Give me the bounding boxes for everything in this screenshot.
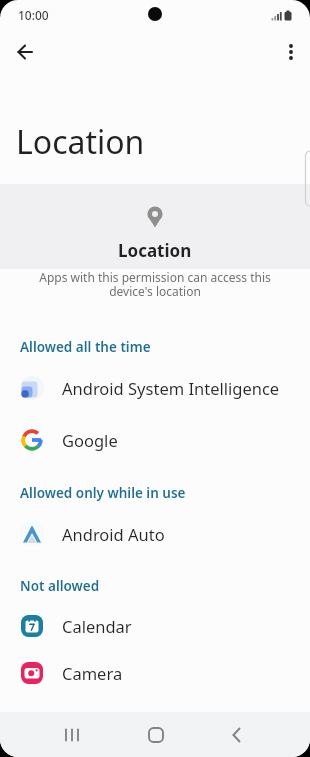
button[interactable]: Calendar <box>0 602 310 649</box>
staticText: Android Auto <box>62 523 165 545</box>
staticText: Not allowed <box>20 577 100 595</box>
staticText: Camera <box>62 662 123 684</box>
staticText: 10:00 <box>18 7 49 23</box>
staticText: Google <box>62 429 118 451</box>
button[interactable]: Camera <box>0 649 310 696</box>
staticText: Calendar <box>62 615 132 637</box>
staticText: Location <box>118 239 192 262</box>
staticText: Android System Intelligence <box>62 377 280 399</box>
button[interactable]: Android Auto <box>0 508 310 560</box>
button[interactable]: Android System Intelligence <box>0 362 310 414</box>
button[interactable]: Google <box>0 414 310 466</box>
staticText: Allowed only while in use <box>20 484 186 502</box>
staticText: Location <box>16 120 145 164</box>
button[interactable] <box>8 35 42 69</box>
staticText: Apps with this permission can access thi… <box>0 269 310 300</box>
button[interactable] <box>126 712 186 757</box>
button[interactable] <box>42 712 102 757</box>
button[interactable] <box>276 37 306 67</box>
staticText: Allowed all the time <box>20 338 151 356</box>
button[interactable] <box>207 712 267 757</box>
